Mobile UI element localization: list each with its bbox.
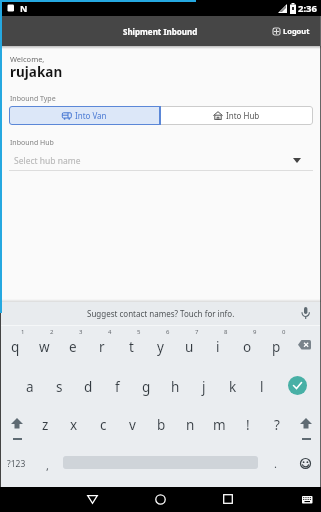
button[interactable]: j: [194, 378, 214, 396]
button[interactable]: Into Van: [9, 106, 160, 125]
staticText: x: [70, 416, 78, 434]
staticText: 7: [195, 328, 199, 336]
button[interactable]: l: [252, 378, 272, 396]
staticText: v: [129, 416, 136, 434]
staticText: m: [213, 416, 226, 434]
staticText: 6: [166, 328, 170, 336]
staticText: b: [157, 416, 166, 434]
button[interactable]: x: [64, 416, 84, 434]
button[interactable]: v: [122, 416, 142, 434]
staticText: N: [20, 2, 28, 14]
staticText: u: [185, 338, 194, 356]
staticText: 2: [50, 328, 54, 336]
staticText: r: [99, 338, 105, 356]
button[interactable]: f: [107, 378, 127, 396]
button[interactable]: d: [78, 378, 98, 396]
staticText: Welcome,: [10, 54, 45, 64]
button[interactable]: a: [20, 378, 40, 396]
button[interactable]: o: [237, 338, 257, 356]
button[interactable]: [288, 376, 307, 395]
button[interactable]: t: [121, 338, 141, 356]
button[interactable]: [10, 418, 24, 432]
staticText: g: [142, 378, 151, 396]
staticText: k: [229, 378, 237, 396]
button[interactable]: y: [150, 338, 170, 356]
button[interactable]: Select hub name: [9, 150, 313, 170]
button[interactable]: r: [92, 338, 112, 356]
button[interactable]: [155, 494, 166, 505]
staticText: d: [84, 378, 93, 396]
button[interactable]: Logout: [273, 26, 310, 36]
button[interactable]: e: [63, 338, 83, 356]
staticText: 2:36: [298, 2, 317, 15]
staticText: 0: [282, 328, 286, 336]
button[interactable]: q: [5, 338, 25, 356]
button[interactable]: [87, 495, 98, 504]
staticText: .: [274, 456, 277, 471]
staticText: 3: [79, 328, 83, 336]
staticText: n: [186, 416, 195, 434]
button[interactable]: [299, 418, 313, 432]
button[interactable]: i: [208, 338, 228, 356]
staticText: 5: [137, 328, 141, 336]
staticText: 4: [108, 328, 112, 336]
button[interactable]: s: [49, 378, 69, 396]
staticText: c: [100, 416, 107, 434]
staticText: j: [202, 378, 206, 396]
button[interactable]: u: [179, 338, 199, 356]
staticText: Logout: [283, 26, 310, 36]
button[interactable]: k: [223, 378, 243, 396]
staticText: i: [216, 338, 220, 356]
button[interactable]: ?: [267, 416, 287, 434]
button[interactable]: w: [34, 338, 54, 356]
staticText: ?: [274, 416, 280, 434]
staticText: ,: [46, 458, 49, 473]
staticText: l: [260, 378, 264, 396]
staticText: Inbound Type: [10, 94, 56, 104]
staticText: a: [26, 378, 34, 396]
button[interactable]: b: [151, 416, 171, 434]
staticText: f: [115, 378, 120, 396]
button[interactable]: p: [266, 338, 286, 356]
button[interactable]: h: [165, 378, 185, 396]
staticText: !: [246, 416, 250, 434]
button[interactable]: g: [136, 378, 156, 396]
button[interactable]: z: [35, 416, 55, 434]
staticText: z: [42, 416, 49, 434]
button[interactable]: Into Hub: [160, 106, 313, 125]
button[interactable]: [223, 494, 233, 504]
button[interactable]: m: [209, 416, 229, 434]
staticText: q: [11, 338, 20, 356]
staticText: t: [129, 338, 134, 356]
staticText: w: [39, 338, 50, 356]
staticText: h: [171, 378, 180, 396]
staticText: Select hub name: [14, 155, 81, 167]
staticText: Into Van: [75, 110, 107, 121]
button[interactable]: !: [238, 416, 258, 434]
staticText: 8: [224, 328, 228, 336]
staticText: Suggest contact names? Touch for info.: [87, 308, 235, 319]
button[interactable]: c: [93, 416, 113, 434]
staticText: s: [56, 378, 63, 396]
staticText: Shipment Inbound: [123, 26, 198, 37]
staticText: Inbound Hub: [10, 138, 54, 148]
button[interactable]: [302, 496, 313, 504]
staticText: p: [272, 338, 281, 356]
staticText: Into Hub: [226, 110, 260, 121]
staticText: 9: [253, 328, 257, 336]
staticText: o: [243, 338, 252, 356]
button[interactable]: n: [180, 416, 200, 434]
staticText: 1: [21, 328, 25, 336]
staticText: ?123: [7, 458, 26, 470]
staticText: e: [69, 338, 77, 356]
staticText: rujakan: [10, 63, 63, 81]
staticText: y: [157, 338, 164, 356]
